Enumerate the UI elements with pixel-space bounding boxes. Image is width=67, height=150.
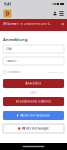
staticText: Passwort	[5, 59, 16, 63]
staticText: Anmeldung	[3, 37, 28, 42]
staticText: Weiter mit Facebook	[20, 114, 50, 117]
staticText: D	[5, 10, 9, 17]
staticText: E-Mail	[5, 47, 12, 51]
button[interactable]: Weiter mit Google	[3, 124, 64, 133]
button[interactable]: Passwort vergessen	[47, 71, 64, 73]
staticText: Passwort vergessen	[48, 71, 64, 73]
staticText: oder	[30, 91, 37, 94]
staticText: 9:41	[4, 1, 11, 7]
button[interactable]: f	[3, 111, 64, 120]
staticText: ✕	[61, 22, 64, 26]
staticText: Weiter mit Google	[22, 127, 49, 130]
button[interactable]: Banner schließen	[60, 21, 65, 26]
staticText: f	[17, 113, 19, 118]
staticText: Willkommen in unserem neuen Shop!	[3, 22, 52, 26]
button[interactable]: Menu	[58, 9, 65, 17]
staticText: Anmelden	[25, 82, 41, 85]
staticText: Angemeldet bleiben	[7, 71, 20, 73]
button[interactable]: Home	[3, 9, 12, 18]
staticText: Benutzerkonto erstellen	[15, 100, 51, 103]
button[interactable]: Account	[52, 9, 58, 17]
button[interactable]: Anmelden	[3, 79, 64, 88]
button[interactable]: Angemeldet bleiben	[3, 70, 24, 73]
button[interactable]: Benutzerkonto erstellen	[3, 97, 64, 106]
